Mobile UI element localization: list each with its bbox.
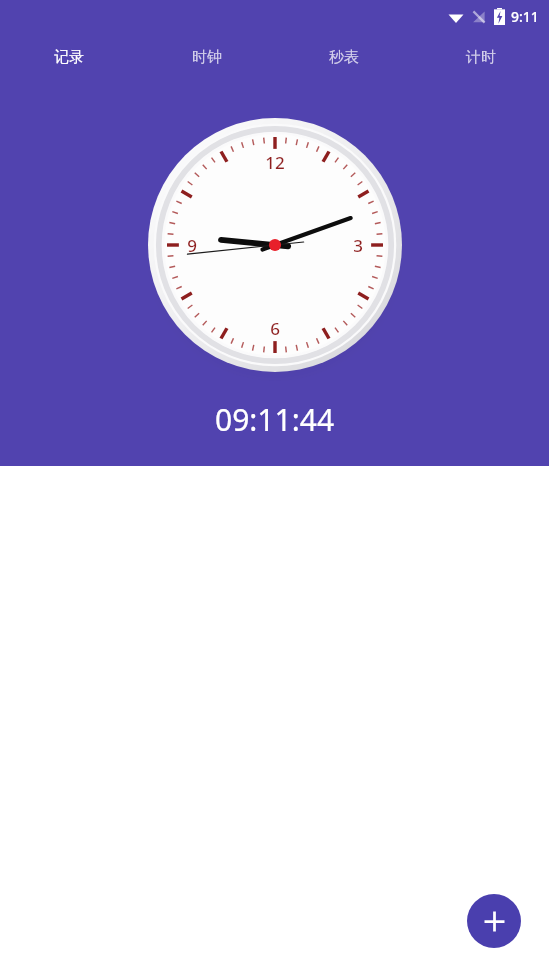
staticText: 记录	[54, 48, 84, 67]
staticText: 9	[187, 234, 197, 257]
staticText: 3	[353, 234, 363, 257]
button[interactable]: 记录	[0, 33, 138, 81]
staticText: 时钟	[192, 48, 222, 67]
button[interactable]: 秒表	[275, 33, 412, 81]
staticText: 12	[265, 151, 285, 174]
staticText: 计时	[466, 48, 496, 67]
button[interactable]: 时钟	[138, 33, 275, 81]
staticText: 6	[270, 317, 280, 340]
staticText: 09:11:44	[215, 399, 335, 440]
staticText: 秒表	[329, 48, 359, 67]
button[interactable]: Add	[467, 894, 521, 948]
button[interactable]: 计时	[412, 33, 549, 81]
staticText: 9:11	[511, 7, 539, 26]
